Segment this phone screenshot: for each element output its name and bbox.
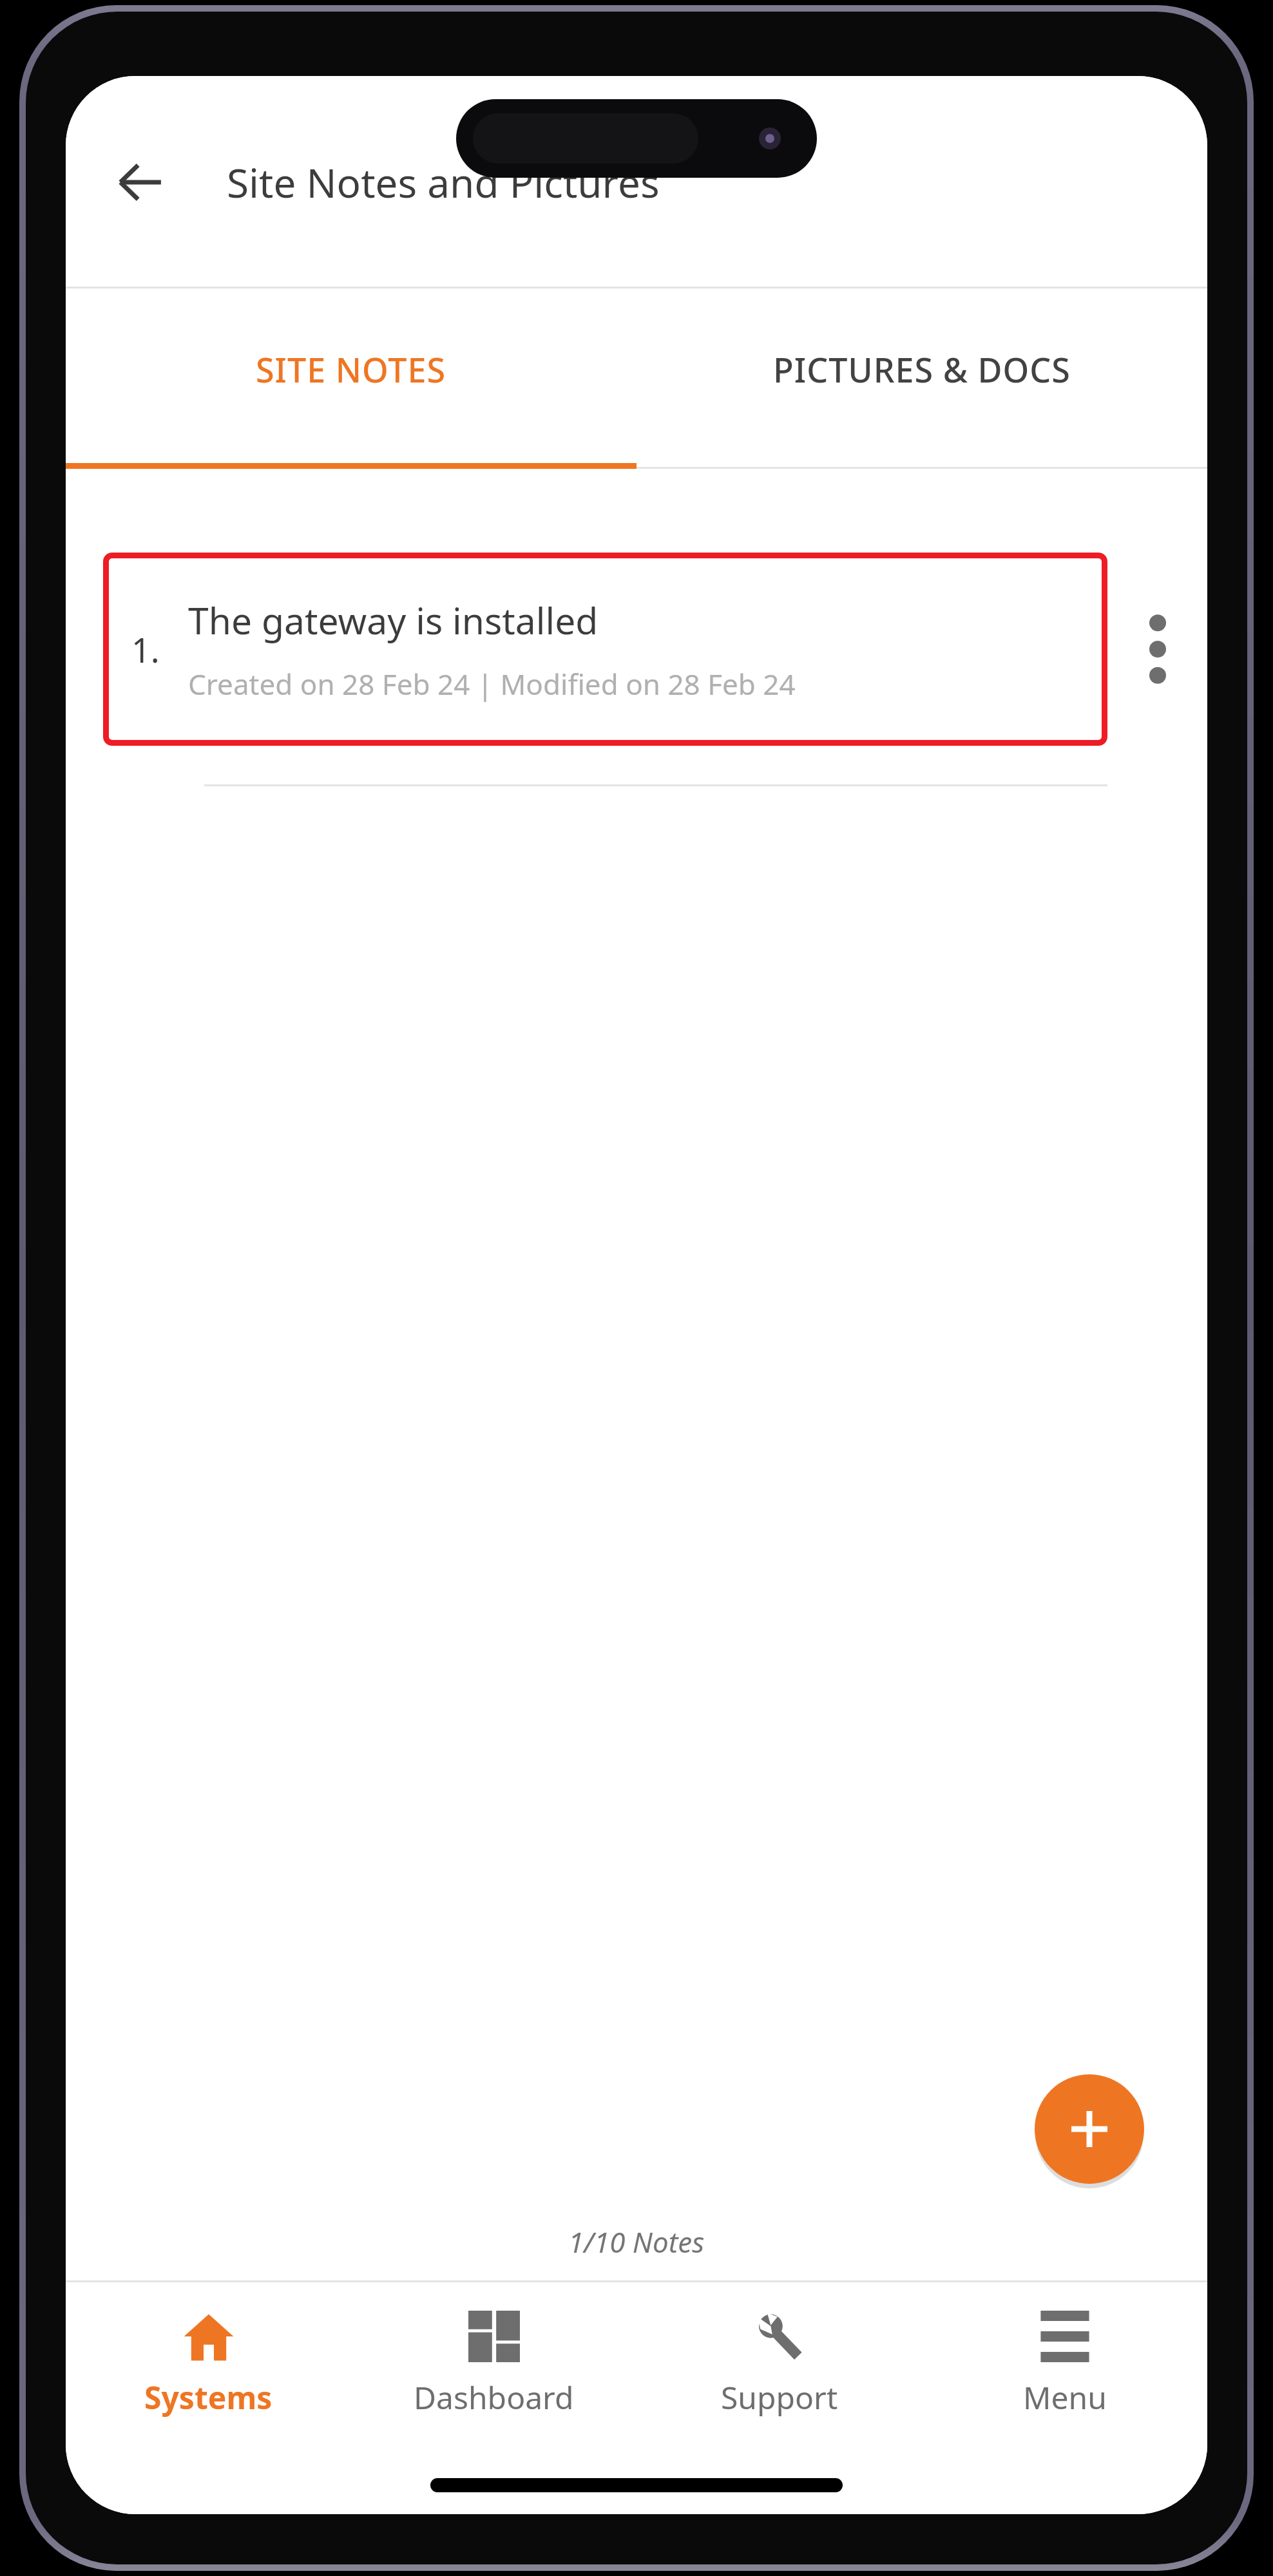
staticText: PICTURES & DOCS	[773, 346, 1071, 392]
staticText: Site Notes and Pictures	[227, 155, 660, 209]
staticText: SITE NOTES	[256, 346, 446, 392]
button[interactable]: 1.	[103, 553, 1107, 746]
button[interactable]: Menu	[922, 2282, 1207, 2447]
staticText: 1/10 Notes	[568, 2222, 705, 2261]
staticText: The gateway is installed	[188, 595, 598, 645]
button[interactable]: SITE NOTES	[66, 289, 636, 469]
button[interactable]: PICTURES & DOCS	[636, 289, 1207, 469]
button[interactable]: Back	[98, 140, 182, 224]
button[interactable]: Systems	[66, 2282, 351, 2447]
button[interactable]: Dashboard	[351, 2282, 636, 2447]
staticText: Systems	[144, 2376, 273, 2418]
staticText: Menu	[1023, 2376, 1107, 2418]
button[interactable]: More options	[1107, 553, 1207, 746]
staticText: Created on 28 Feb 24 | Modified on 28 Fe…	[188, 665, 796, 703]
button[interactable]: Support	[636, 2282, 922, 2447]
button[interactable]: Add note	[1035, 2074, 1144, 2184]
staticText: Support	[721, 2376, 838, 2418]
staticText: Dashboard	[414, 2376, 574, 2418]
staticText: 1.	[131, 627, 160, 672]
